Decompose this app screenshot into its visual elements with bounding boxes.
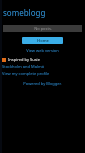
staticText: Powered by Blogger. [23, 81, 62, 86]
button[interactable]: Home [22, 37, 63, 44]
staticText: Home [37, 38, 49, 43]
staticText: View web version [26, 48, 59, 53]
staticText: View my complete profile [2, 71, 50, 76]
button[interactable]: View web version [0, 48, 85, 53]
button[interactable]: Powered by Blogger. [0, 81, 85, 86]
button[interactable]: Author avatar [0, 57, 85, 62]
staticText: Stockholm and Malmö [2, 64, 45, 69]
staticText: No posts. [34, 26, 52, 31]
staticText: someblogg [3, 7, 46, 18]
button[interactable]: Stockholm and Malmö [0, 64, 85, 69]
staticText: Inspired by Susie [8, 57, 40, 62]
button[interactable]: No posts. [3, 25, 82, 32]
button[interactable]: View my complete profile [0, 71, 85, 76]
button[interactable]: someblogg [0, 7, 85, 18]
